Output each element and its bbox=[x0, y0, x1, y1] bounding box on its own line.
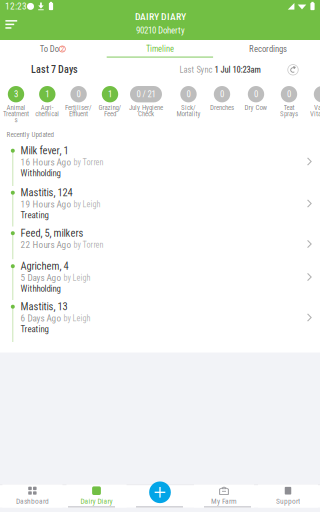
staticText: Support bbox=[276, 497, 300, 505]
staticText: by Torren bbox=[72, 240, 104, 250]
staticText: s bbox=[14, 116, 17, 124]
staticText: Recently Updated bbox=[7, 130, 55, 139]
button[interactable]: 0 bbox=[0, 0, 320, 512]
staticText: by Torren bbox=[72, 157, 104, 167]
staticText: 0 bbox=[287, 89, 291, 99]
button[interactable]: 1 bbox=[0, 0, 320, 512]
staticText: 12:23 bbox=[5, 1, 27, 12]
staticText: 1 Jul 10:23am bbox=[214, 65, 260, 75]
staticText: 19 Hours Ago bbox=[21, 199, 72, 210]
button[interactable]: To Do bbox=[0, 40, 107, 58]
staticText: July Hygiene bbox=[129, 103, 163, 112]
staticText: Recordings bbox=[249, 44, 287, 54]
staticText: 16 Hours Ago bbox=[21, 157, 72, 168]
button[interactable]: 0 bbox=[0, 0, 320, 512]
staticText: Agri- bbox=[41, 103, 54, 112]
button[interactable]: Recordings bbox=[213, 40, 320, 58]
staticText: 0 bbox=[77, 89, 81, 99]
staticText: Feed, 5, milkers bbox=[21, 227, 84, 239]
button[interactable]: Agrichem, 4 bbox=[0, 259, 320, 301]
staticText: 0 bbox=[220, 89, 224, 99]
staticText: 5 Days Ago bbox=[21, 272, 62, 283]
button[interactable]: 0 bbox=[0, 0, 320, 512]
button[interactable]: My Farm bbox=[194, 484, 254, 507]
staticText: Grazing/ bbox=[98, 103, 121, 112]
staticText: Check bbox=[138, 110, 154, 118]
staticText: Mastitis, 13 bbox=[21, 300, 68, 313]
button[interactable]: Feed, 5, milkers bbox=[0, 226, 320, 259]
button[interactable]: Mastitis, 124 bbox=[0, 186, 320, 228]
staticText: Sick/ bbox=[181, 103, 196, 112]
button[interactable]: 3 bbox=[0, 0, 320, 512]
staticText: by Leigh bbox=[72, 199, 101, 209]
staticText: Timeline bbox=[146, 44, 174, 54]
staticText: Agrichem, 4 bbox=[21, 260, 69, 272]
staticText: Treating bbox=[21, 324, 49, 335]
staticText: Mastitis, 124 bbox=[21, 186, 73, 199]
staticText: Teat bbox=[283, 103, 294, 112]
button[interactable]: Milk fever, 1 bbox=[0, 144, 320, 186]
button[interactable]: Mastitis, 13 bbox=[0, 300, 320, 342]
staticText: 3 bbox=[14, 89, 18, 99]
button[interactable]: Support bbox=[258, 484, 318, 507]
staticText: Vacc/ bbox=[314, 103, 320, 112]
button[interactable]: 1 bbox=[0, 0, 320, 512]
button[interactable]: 0 bbox=[0, 0, 320, 512]
staticText: by Leigh bbox=[62, 313, 91, 323]
staticText: 1 bbox=[108, 89, 112, 99]
staticText: chemical bbox=[35, 110, 59, 118]
staticText: Milk fever, 1 bbox=[21, 144, 69, 157]
button[interactable]: Dairy Diary bbox=[66, 484, 126, 507]
button[interactable]: Dashboard bbox=[2, 484, 62, 507]
staticText: 90210 Doherty bbox=[136, 25, 185, 35]
staticText: Dairy Diary bbox=[80, 497, 112, 505]
staticText: Fertiliser/ bbox=[65, 103, 92, 112]
staticText: Withholding bbox=[21, 168, 61, 179]
button[interactable]: 0 bbox=[0, 0, 320, 512]
staticText: Dry Cow bbox=[244, 103, 267, 112]
staticText: Feed bbox=[104, 110, 116, 118]
staticText: Last Sync bbox=[179, 65, 214, 75]
button[interactable]: Open menu bbox=[1, 14, 27, 36]
staticText: Treating bbox=[21, 210, 49, 221]
staticText: Mortality bbox=[176, 110, 200, 118]
staticText: Last 7 Days bbox=[31, 64, 78, 75]
button[interactable]: 0 / 21 bbox=[0, 0, 320, 512]
staticText: 22 Hours Ago bbox=[21, 239, 72, 250]
staticText: To Do bbox=[40, 44, 59, 54]
staticText: Dashboard bbox=[16, 497, 49, 505]
button[interactable]: Add new entry bbox=[149, 481, 171, 503]
staticText: Effluent bbox=[69, 110, 88, 118]
staticText: 6 Days Ago bbox=[21, 313, 62, 324]
staticText: Withholding bbox=[21, 284, 61, 294]
staticText: 1 bbox=[45, 89, 49, 99]
staticText: Treatment bbox=[3, 110, 29, 118]
staticText: My Farm bbox=[211, 497, 237, 505]
staticText: 0 / 21 bbox=[136, 89, 155, 99]
staticText: DAIRY DIARY bbox=[135, 11, 186, 22]
staticText: 0 bbox=[186, 89, 190, 99]
staticText: 0 bbox=[254, 89, 258, 99]
staticText: 2 bbox=[61, 45, 64, 53]
staticText: Sprays bbox=[280, 110, 298, 118]
staticText: Drenches bbox=[210, 103, 234, 112]
button[interactable]: 0 bbox=[0, 0, 320, 512]
staticText: Animal bbox=[6, 103, 25, 112]
button[interactable]: Sync now bbox=[285, 62, 301, 78]
button[interactable]: Timeline bbox=[107, 40, 213, 58]
staticText: Vitamins bbox=[310, 110, 320, 118]
staticText: by Leigh bbox=[62, 273, 91, 283]
